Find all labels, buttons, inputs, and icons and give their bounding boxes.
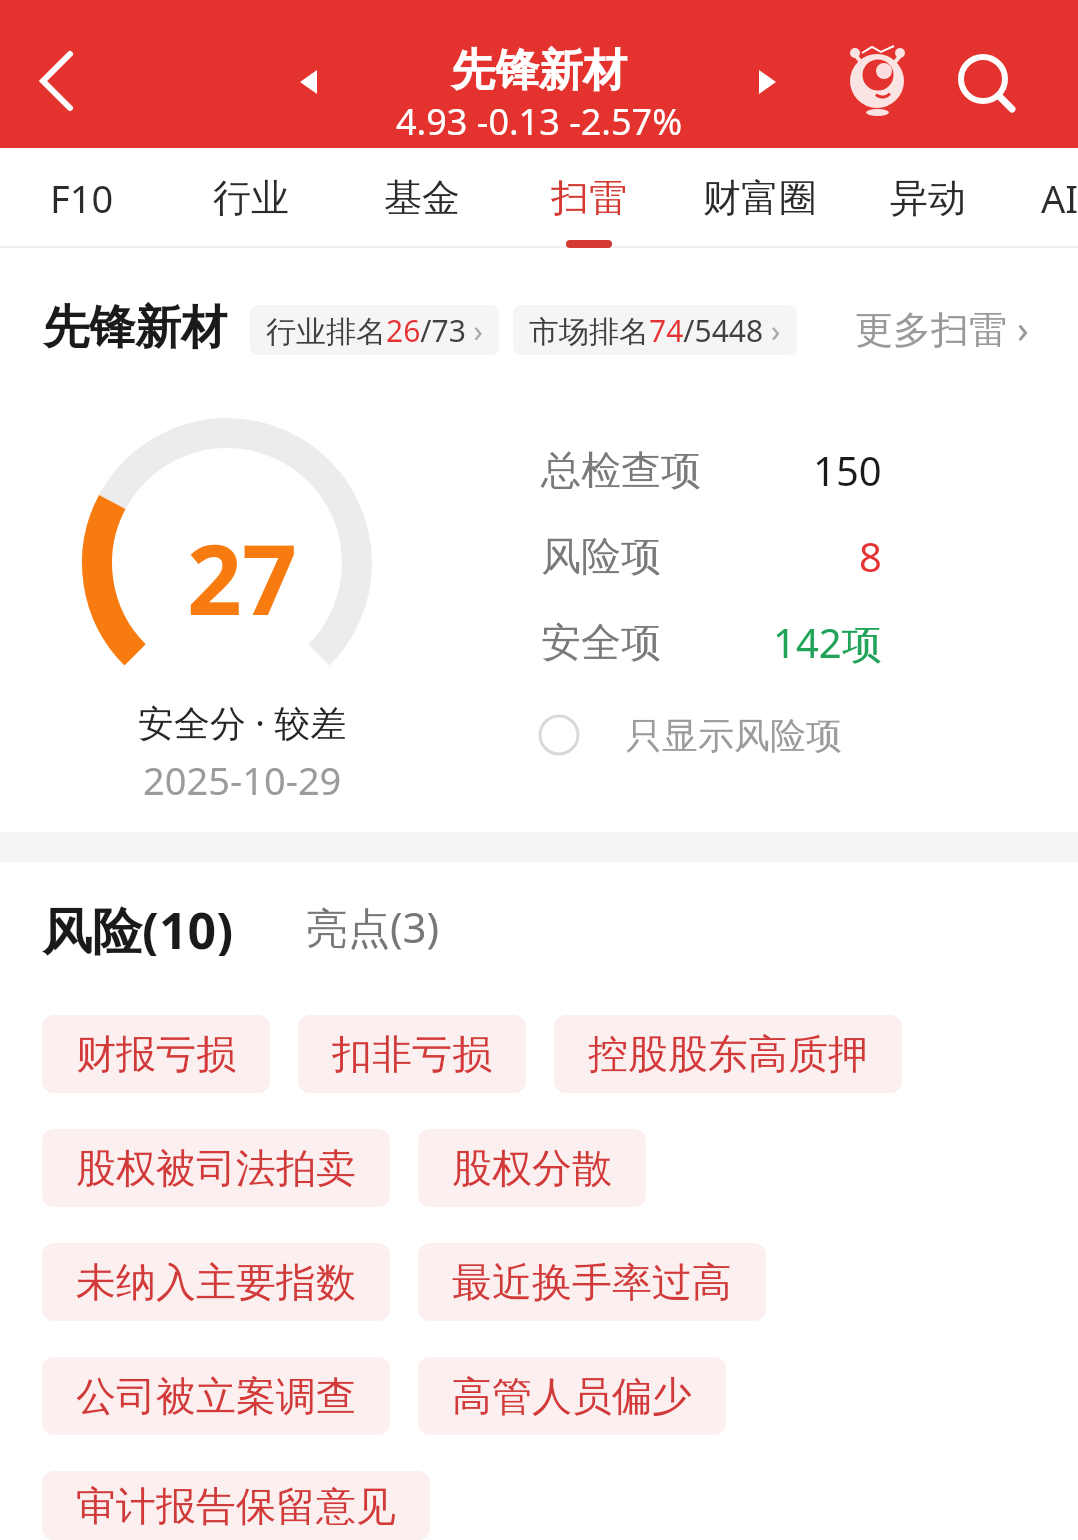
staticText: 股权分散	[452, 1143, 612, 1193]
staticText: 财报亏损	[76, 1029, 236, 1079]
staticText: 扣非亏损	[332, 1029, 492, 1079]
staticText: 扫雷	[551, 174, 627, 222]
button[interactable]	[20, 34, 90, 124]
staticText: 27	[187, 512, 297, 642]
staticText: 风险项	[541, 531, 661, 581]
button[interactable]: 更多扫雷 ›	[855, 298, 1029, 358]
button[interactable]: 未纳入主要指数	[42, 1243, 390, 1321]
button[interactable]: 风险(10)	[42, 896, 234, 956]
staticText: 市场排名74/5448 ›	[529, 310, 781, 351]
button[interactable]: F10	[0, 148, 167, 248]
staticText: 先锋新材	[43, 299, 227, 357]
staticText: 审计报告保留意见	[76, 1481, 396, 1531]
staticText: 150	[813, 443, 882, 497]
button[interactable]: 只显示风险项	[538, 705, 842, 765]
button[interactable]	[842, 36, 914, 122]
staticText: 总检查项	[541, 445, 701, 495]
staticText: 财富圈	[703, 174, 817, 222]
button[interactable]: 高管人员偏少	[418, 1357, 726, 1435]
staticText: F10	[50, 172, 114, 224]
staticText: 142项	[773, 615, 882, 670]
button[interactable]: 股权分散	[418, 1129, 646, 1207]
staticText: 高管人员偏少	[452, 1371, 692, 1421]
button[interactable]: 最近换手率过高	[418, 1243, 766, 1321]
staticText: 4.93 -0.13 -2.57%	[396, 97, 683, 145]
button[interactable]: 财富圈	[675, 148, 845, 248]
staticText: 未纳入主要指数	[76, 1257, 356, 1307]
button[interactable]: 扫雷	[504, 148, 674, 248]
staticText: 行业	[213, 174, 289, 222]
staticText: 最近换手率过高	[452, 1257, 732, 1307]
staticText: 亮点(3)	[306, 898, 440, 955]
button[interactable]: AI诊股	[1013, 148, 1078, 248]
button[interactable]: 行业排名26/73 ›	[250, 305, 499, 355]
button[interactable]: 异动	[843, 148, 1013, 248]
button[interactable]	[950, 46, 1022, 118]
button[interactable]: 审计报告保留意见	[42, 1471, 430, 1540]
staticText: 公司被立案调查	[76, 1371, 356, 1421]
staticText: 控股股东高质押	[588, 1029, 868, 1079]
button[interactable]: 财报亏损	[42, 1015, 270, 1093]
staticText: 行业排名26/73 ›	[266, 310, 483, 351]
staticText: 8	[859, 529, 882, 583]
staticText: 异动	[890, 174, 966, 222]
staticText: 更多扫雷 ›	[855, 302, 1029, 354]
button[interactable]: 控股股东高质押	[554, 1015, 902, 1093]
button[interactable]: 基金	[337, 148, 507, 248]
staticText: 2025-10-29	[143, 754, 342, 806]
staticText: 先锋新材	[451, 43, 627, 98]
button[interactable]: 行业	[166, 148, 336, 248]
staticText: 股权被司法拍卖	[76, 1143, 356, 1193]
button[interactable]: 股权被司法拍卖	[42, 1129, 390, 1207]
button[interactable]: 公司被立案调查	[42, 1357, 390, 1435]
staticText: AI诊股	[1041, 172, 1078, 224]
staticText: 只显示风险项	[626, 713, 842, 758]
staticText: 风险(10)	[42, 896, 234, 956]
button[interactable]: 市场排名74/5448 ›	[513, 305, 797, 355]
staticText: 安全项	[541, 617, 661, 667]
button[interactable]: 亮点(3)	[306, 898, 440, 955]
staticText: 基金	[384, 174, 460, 222]
button[interactable]: 扣非亏损	[298, 1015, 526, 1093]
staticText: 安全分 · 较差	[138, 698, 347, 747]
